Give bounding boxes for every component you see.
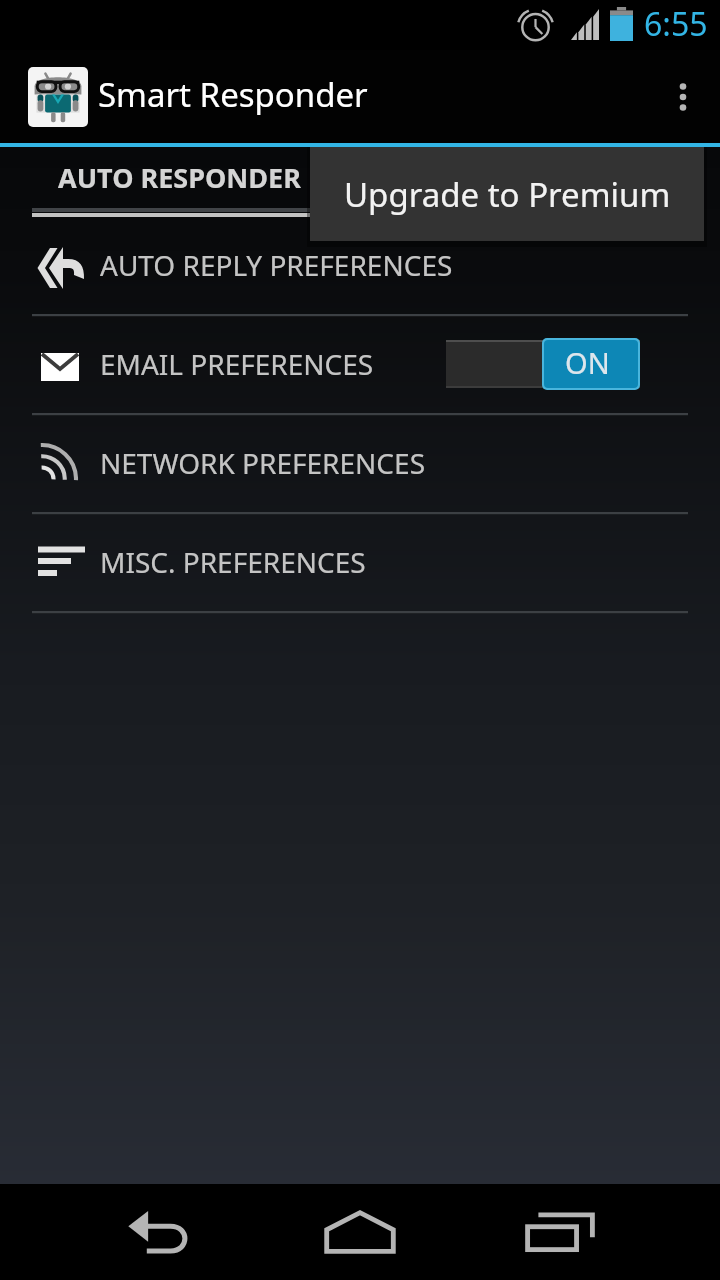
staticText: ON — [565, 343, 610, 382]
button[interactable]: AUTO RESPONDER — [0, 147, 720, 218]
button[interactable]: MISC. PREFERENCES — [0, 515, 720, 614]
staticText: 6:55 — [644, 2, 708, 46]
staticText: NETWORK PREFERENCES — [100, 444, 425, 482]
button[interactable]: Back — [60, 1184, 260, 1280]
button[interactable]: Recent apps — [460, 1184, 660, 1280]
button[interactable]: Upgrade to Premium — [310, 147, 704, 241]
button[interactable]: AUTO REPLY PREFERENCES — [0, 218, 720, 317]
button[interactable]: ON — [446, 338, 640, 390]
staticText: AUTO REPLY PREFERENCES — [100, 246, 453, 284]
button[interactable]: NETWORK PREFERENCES — [0, 416, 720, 515]
button[interactable]: EMAIL PREFERENCES — [0, 317, 720, 416]
button[interactable]: More options — [646, 50, 720, 143]
staticText: Upgrade to Premium — [344, 172, 671, 217]
staticText: EMAIL PREFERENCES — [100, 345, 374, 383]
staticText: Smart Responder — [98, 72, 368, 117]
button[interactable]: Home — [260, 1184, 460, 1280]
staticText: MISC. PREFERENCES — [100, 543, 366, 581]
staticText: AUTO RESPONDER — [58, 159, 301, 196]
